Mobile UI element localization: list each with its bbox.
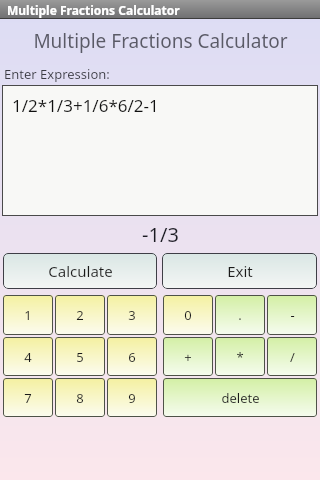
staticText: -1/3: [142, 221, 179, 248]
staticText: Multiple Fractions Calculator: [33, 28, 288, 54]
staticText: 8: [76, 389, 84, 407]
staticText: Calculate: [48, 261, 113, 281]
button[interactable]: +: [163, 337, 213, 376]
button[interactable]: /: [267, 337, 317, 376]
staticText: *: [236, 348, 244, 366]
staticText: 9: [128, 389, 136, 407]
staticText: Enter Expression:: [4, 65, 110, 83]
staticText: Multiple Fractions Calculator: [7, 2, 180, 18]
staticText: 5: [76, 348, 84, 366]
button[interactable]: *: [215, 337, 265, 376]
button[interactable]: Exit: [162, 253, 317, 289]
staticText: Exit: [227, 261, 253, 281]
staticText: .: [238, 306, 242, 324]
button[interactable]: delete: [163, 378, 317, 417]
staticText: -: [290, 306, 295, 324]
button[interactable]: -: [267, 295, 317, 335]
button[interactable]: 1: [3, 295, 53, 335]
button[interactable]: 5: [55, 337, 105, 376]
button[interactable]: 2: [55, 295, 105, 335]
button[interactable]: 3: [107, 295, 157, 335]
button[interactable]: 6: [107, 337, 157, 376]
button[interactable]: 7: [3, 378, 53, 417]
staticText: 3: [128, 306, 136, 324]
button[interactable]: 1/2*1/3+1/6*6/2-1: [2, 85, 318, 216]
staticText: 0: [184, 306, 192, 324]
button[interactable]: 0: [163, 295, 213, 335]
button[interactable]: 4: [3, 337, 53, 376]
staticText: 6: [128, 348, 136, 366]
button[interactable]: 8: [55, 378, 105, 417]
staticText: delete: [221, 389, 260, 407]
staticText: 7: [24, 389, 32, 407]
staticText: 1: [24, 306, 32, 324]
button[interactable]: Calculate: [3, 253, 157, 289]
button[interactable]: 9: [107, 378, 157, 417]
staticText: 1/2*1/3+1/6*6/2-1: [12, 94, 159, 117]
button[interactable]: .: [215, 295, 265, 335]
staticText: 2: [76, 306, 84, 324]
staticText: /: [290, 348, 295, 366]
staticText: +: [184, 348, 192, 366]
staticText: 4: [24, 348, 32, 366]
